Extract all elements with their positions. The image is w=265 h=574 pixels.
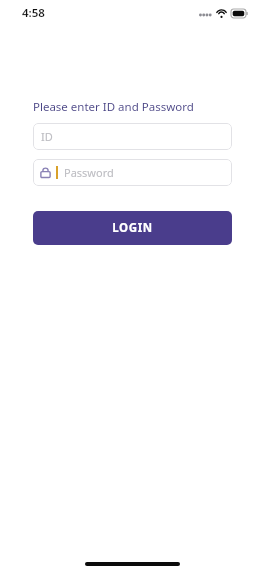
staticText: Password xyxy=(64,165,114,180)
button[interactable]: Password xyxy=(33,159,232,186)
staticText: ID xyxy=(41,129,53,144)
button[interactable]: ID xyxy=(33,123,232,150)
staticText: 4:58 xyxy=(22,5,45,21)
staticText: LOGIN xyxy=(112,220,153,236)
staticText: Please enter ID and Password xyxy=(33,99,194,115)
button[interactable]: LOGIN xyxy=(33,211,232,245)
